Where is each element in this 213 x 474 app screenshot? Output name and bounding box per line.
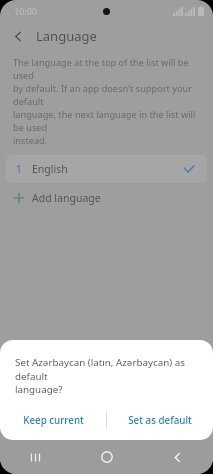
- staticText: Language: [36, 27, 97, 45]
- staticText: English: [32, 162, 68, 176]
- button[interactable]: Set as default: [107, 400, 213, 440]
- staticText: language?: [15, 383, 63, 396]
- staticText: Add language: [32, 191, 101, 205]
- button[interactable]: Home: [71, 440, 142, 474]
- staticText: Set Azərbaycan (latın, Azərbaycan) as de…: [15, 356, 198, 383]
- staticText: language, the next language in the list …: [13, 108, 200, 134]
- button[interactable]: Keep current: [0, 400, 106, 440]
- staticText: 1: [16, 162, 22, 176]
- staticText: instead.: [13, 134, 48, 147]
- button[interactable]: 1: [6, 155, 207, 183]
- staticText: Set as default: [128, 414, 192, 427]
- staticText: Keep current: [23, 414, 84, 427]
- staticText: by default. If an app doesn't support yo…: [13, 82, 200, 108]
- staticText: 10:00: [14, 5, 38, 17]
- button[interactable]: Recents: [0, 440, 71, 474]
- button[interactable]: Back: [142, 440, 213, 474]
- staticText: The language at the top of the list will…: [13, 56, 200, 82]
- button[interactable]: Add language: [0, 183, 213, 213]
- button[interactable]: Back: [6, 24, 30, 48]
